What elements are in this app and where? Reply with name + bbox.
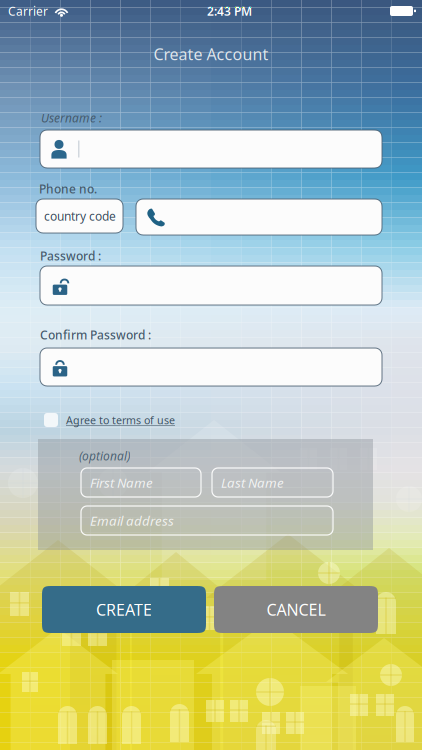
staticText: Phone no. xyxy=(39,181,97,197)
staticText: Confirm Password : xyxy=(40,327,151,343)
staticText: CANCEL xyxy=(266,599,325,620)
staticText: Last Name xyxy=(221,474,284,491)
staticText: Create Account xyxy=(153,43,268,65)
staticText: Carrier xyxy=(8,3,48,19)
staticText: CREATE xyxy=(96,599,152,620)
staticText: Agree to terms of use xyxy=(66,413,175,427)
button[interactable]: CREATE xyxy=(42,586,206,633)
staticText: country code xyxy=(44,208,116,224)
staticText: 2:43 PM xyxy=(207,3,252,19)
staticText: First Name xyxy=(90,474,153,491)
staticText: Password : xyxy=(40,248,101,264)
button[interactable]: CANCEL xyxy=(214,586,378,633)
button[interactable]: Agree to terms of use xyxy=(44,410,175,430)
staticText: Email address xyxy=(90,512,174,529)
staticText: Username : xyxy=(41,110,102,126)
staticText: (optional) xyxy=(79,448,130,464)
